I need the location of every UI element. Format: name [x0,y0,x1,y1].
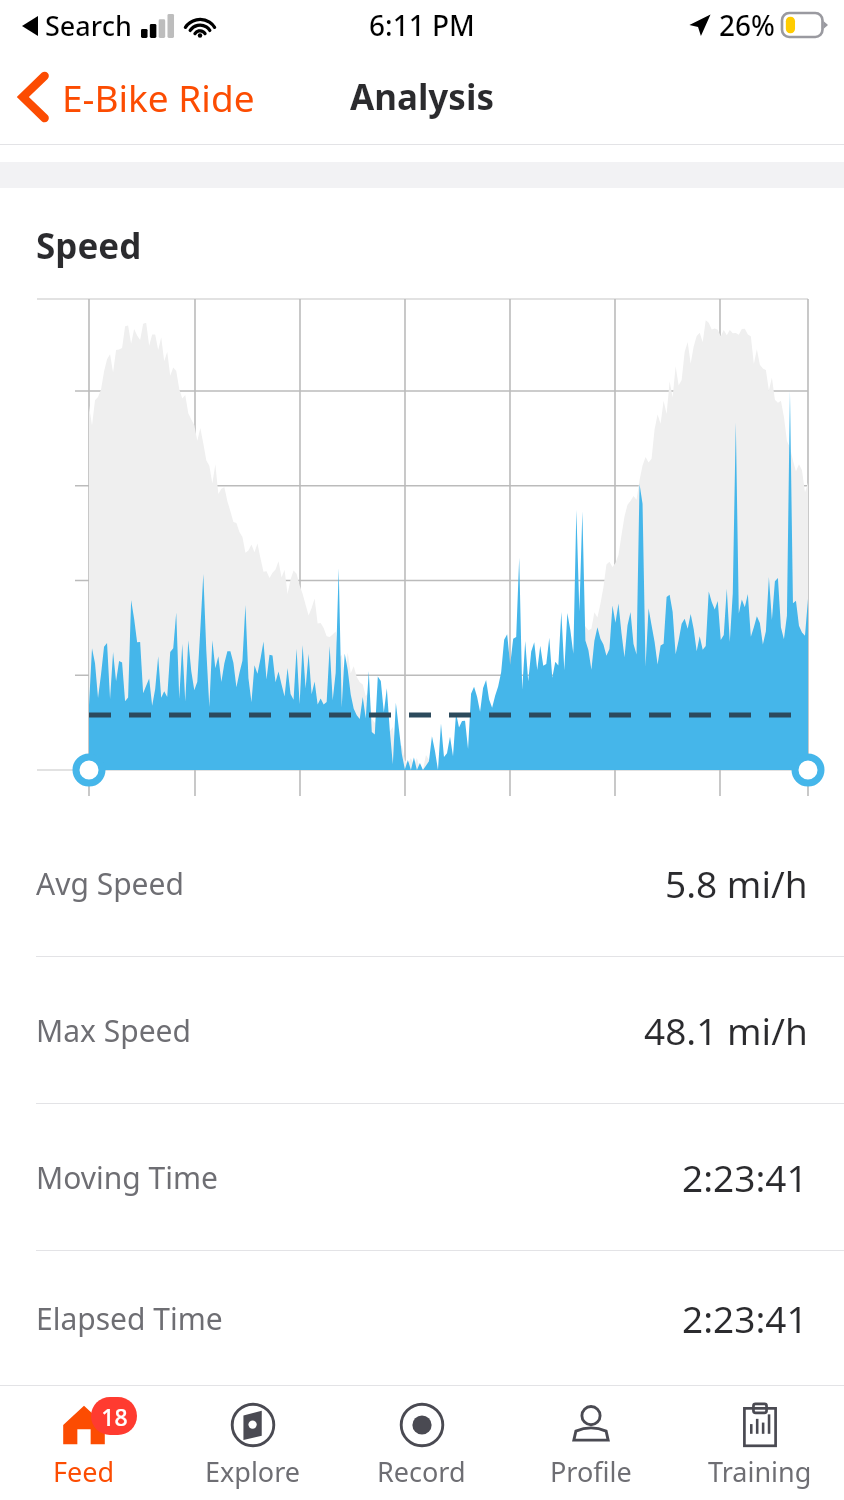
staticText: 2:23:41 [682,1293,808,1343]
button[interactable]: 18 [0,1386,168,1500]
button[interactable]: Training [675,1386,844,1500]
staticText: Speed [36,222,142,270]
staticText: Search [45,7,132,44]
button[interactable]: Explore [168,1386,337,1500]
staticText: Analysis [350,73,494,121]
staticText: Elapsed Time [36,1298,223,1339]
staticText: Moving Time [36,1157,218,1198]
staticText: 18 [101,1401,128,1432]
staticText: 26% [719,6,775,44]
other: Back [20,73,48,121]
staticText: Max Speed [36,1010,191,1051]
button[interactable]: Max Speed [0,957,844,1103]
staticText: 48.1 mi/h [644,1005,808,1055]
staticText: Explore [205,1453,301,1490]
staticText: Record [377,1453,466,1490]
staticText: 6:11 PM [369,6,475,44]
button[interactable]: Profile [506,1386,675,1500]
staticText: Feed [53,1453,115,1490]
staticText: 2:23:41 [682,1152,808,1202]
button[interactable]: Moving Time [0,1104,844,1250]
staticText: 5.8 mi/h [665,858,808,908]
staticText: E-Bike Ride [62,72,255,122]
button[interactable]: Elapsed Time [0,1251,844,1385]
button[interactable]: Back [0,64,267,130]
staticText: Profile [550,1453,632,1490]
button[interactable]: Avg Speed [0,810,844,956]
staticText: Training [708,1453,812,1490]
button[interactable]: Record [337,1386,506,1500]
staticText: Avg Speed [36,863,184,904]
